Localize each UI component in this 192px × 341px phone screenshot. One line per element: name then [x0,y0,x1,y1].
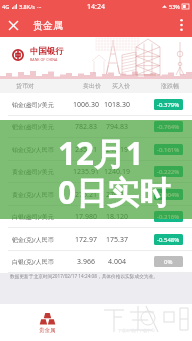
staticText: 782.83 [75,122,97,132]
staticText: 276.18 [106,190,128,200]
staticText: 240.19 [106,145,128,155]
staticText: 白银(盎司)/美元 [12,213,54,221]
staticText: -0.548% [157,236,180,244]
staticText: 货币对 [16,82,34,90]
staticText: 钯金(克)/人民币 [12,236,54,244]
staticText: 下载吧 软件下载中心 [118,328,156,333]
staticText: -0.379% [157,101,180,109]
staticText: 12月1 0日实时 [58,131,171,213]
staticText: 黄金(克)/人民币 [12,191,54,199]
staticText: 钯金(盎司)/美元 [12,123,54,131]
button[interactable]: 铂金(盎司)/美元 [0,93,192,116]
staticText: -0.216% [157,213,180,221]
button[interactable]: Close [0,13,26,37]
staticText: 贵金属 [33,19,63,32]
staticText: 白银(克)/人民币 [12,258,54,266]
staticText: -0.764% [157,123,180,131]
staticText: 贵金属 [39,327,56,334]
staticText: 1018.30 [104,100,130,110]
staticText: ··· [37,3,42,10]
staticText: 4G [2,3,10,10]
staticText: 卖出价 [83,82,101,90]
staticText: 3.8K/s [19,3,35,10]
staticText: 1235.91 [73,167,99,177]
staticText: BANK OF CHINA [30,57,58,62]
staticText: 4.004 [108,257,126,267]
button[interactable]: 铂金(克)/人民币 [0,138,192,161]
button[interactable]: 钯金(盎司)/美元 [0,115,192,138]
button[interactable]: 黄金(盎司)/美元 [0,160,192,183]
staticText: 中国银行 [30,46,64,57]
staticText: 数据更新于北京时间2017/02/17 14:24:08，具体价格以实际成交为准… [10,273,158,279]
staticText: 铂金(克)/人民币 [12,146,54,154]
button[interactable]: 贵金属 [33,312,61,334]
staticText: 1240.19 [104,167,130,177]
staticText: 17.980 [75,212,97,222]
staticText: -0.161% [157,146,180,154]
staticText: 175.37 [106,235,128,245]
staticText: 黄金(盎司)/美元 [12,168,54,176]
staticText: -0.222% [157,168,180,176]
staticText: 0% [164,258,173,266]
staticText: 794.83 [106,122,128,132]
button[interactable]: 钯金(克)/人民币 [0,228,192,251]
staticText: 铂金(盎司)/美元 [12,101,54,109]
staticText: 14:24 [87,2,105,12]
staticText: -0.004% [157,191,180,199]
button[interactable]: More options [170,13,192,37]
staticText: 53% [169,3,180,10]
staticText: 涨跌幅 [161,82,179,90]
staticText: 3.966 [77,257,95,267]
staticText: 18.120 [106,212,128,222]
staticText: 172.97 [75,235,97,245]
button[interactable]: 白银(盎司)/美元 [0,205,192,228]
staticText: 235.91 [75,145,97,155]
staticText: 275.21 [75,190,97,200]
button[interactable]: 白银(克)/人民币 [0,250,192,273]
button[interactable]: 黄金(克)/人民币 [0,183,192,206]
staticText: 买入价 [112,82,130,90]
staticText: 1006.30 [73,100,99,110]
